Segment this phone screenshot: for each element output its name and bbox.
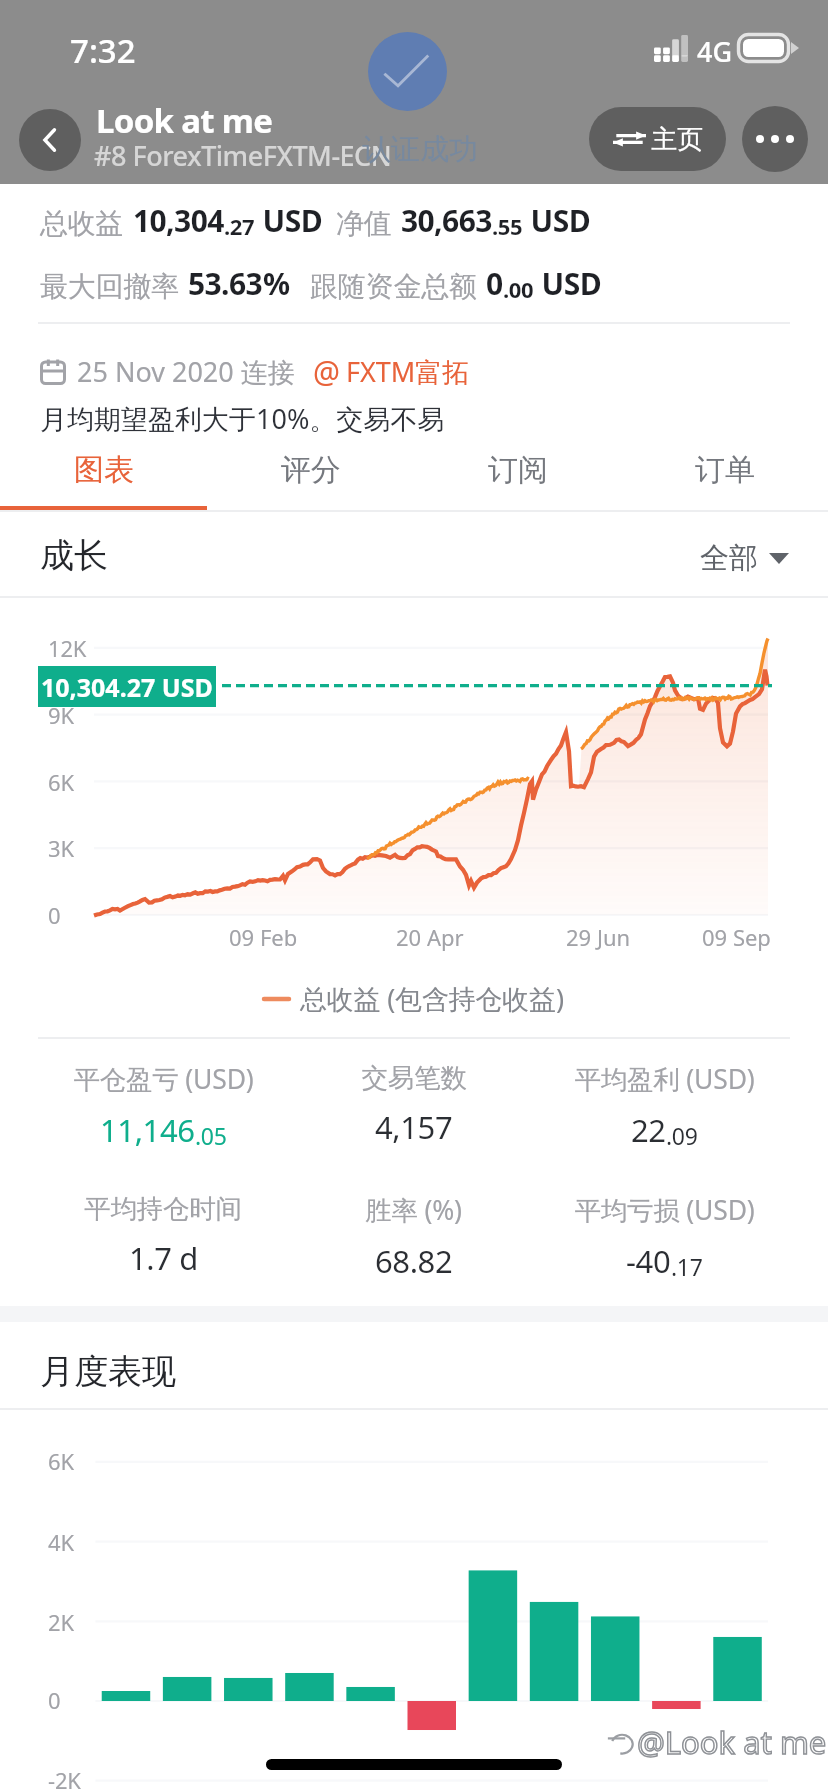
staticText: .00 xyxy=(503,274,534,304)
staticText: 平均持仓时间 xyxy=(84,1192,242,1225)
staticText: 主页 xyxy=(651,123,703,156)
staticText: 平均亏损 (USD) xyxy=(574,1192,755,1228)
staticText: 11,146 xyxy=(100,1109,195,1151)
staticText: #8 ForexTimeFXTM-ECN xyxy=(94,137,392,174)
button[interactable]: 主页 xyxy=(589,107,726,171)
staticText: 10,304.27 USD xyxy=(41,670,213,704)
staticText: 0 xyxy=(48,900,61,930)
staticText: -2K xyxy=(48,1765,81,1792)
staticText: 图表 xyxy=(74,451,134,489)
staticText: -40 xyxy=(626,1240,671,1282)
staticText: 20 Apr xyxy=(396,922,464,952)
staticText: 30,663 xyxy=(401,200,492,241)
staticText: 4K xyxy=(48,1527,74,1557)
staticText: 成长 xyxy=(40,534,108,577)
staticText: 交易笔数 xyxy=(361,1061,467,1094)
staticText: .17 xyxy=(671,1251,703,1282)
staticText: 月均期望盈利大于10%。交易不易 xyxy=(40,400,445,437)
staticText: 胜率 (%) xyxy=(365,1192,462,1228)
button[interactable]: 图表 xyxy=(0,446,207,512)
staticText: .05 xyxy=(195,1120,227,1151)
staticText: 月度表现 xyxy=(40,1350,176,1393)
staticText: 跟随资金总额 xyxy=(310,269,477,304)
button[interactable]: 订单 xyxy=(621,446,828,512)
staticText: 净值 xyxy=(336,206,392,241)
staticText: 订单 xyxy=(695,451,755,489)
staticText: FXTM富拓 xyxy=(346,353,470,390)
staticText: Look at me xyxy=(96,98,273,143)
staticText: 29 Jun xyxy=(566,922,631,952)
staticText: .09 xyxy=(666,1120,698,1151)
staticText: 9K xyxy=(48,700,74,730)
staticText: 评分 xyxy=(281,451,341,489)
button[interactable]: 全部 xyxy=(700,540,789,577)
staticText: @Look at me xyxy=(637,1721,827,1763)
staticText: 25 Nov 2020 连接 xyxy=(77,353,295,390)
button[interactable]: Back xyxy=(19,109,81,171)
staticText: 22 xyxy=(631,1109,666,1151)
staticText: 1.7 d xyxy=(129,1237,198,1279)
staticText: USD xyxy=(255,200,323,241)
staticText: .27 xyxy=(224,211,255,241)
staticText: USD xyxy=(523,200,591,241)
staticText: 0 xyxy=(48,1685,61,1715)
staticText: 09 Sep xyxy=(702,922,771,952)
staticText: 总收益 (包含持仓收益) xyxy=(300,980,564,1017)
staticText: 2K xyxy=(48,1607,74,1637)
staticText: 09 Feb xyxy=(229,922,298,952)
button[interactable]: 评分 xyxy=(207,446,414,512)
staticText: 4G xyxy=(697,33,733,70)
staticText: 68.82 xyxy=(375,1240,453,1282)
staticText: 6K xyxy=(48,1446,74,1476)
staticText: 订阅 xyxy=(488,451,548,489)
button[interactable]: @ xyxy=(313,351,470,392)
staticText: 平均盈利 (USD) xyxy=(574,1061,755,1097)
staticText: 总收益 xyxy=(40,206,124,241)
staticText: 认证成功 xyxy=(362,131,478,168)
staticText: 0 xyxy=(486,263,503,304)
staticText: 12K xyxy=(48,633,87,663)
staticText: 53.63 xyxy=(188,263,263,304)
staticText: 3K xyxy=(48,833,74,863)
staticText: 最大回撤率 xyxy=(40,269,179,304)
staticText: 全部 xyxy=(700,540,758,577)
staticText: 平仓盈亏 (USD) xyxy=(73,1061,254,1097)
staticText: 6K xyxy=(48,767,74,797)
staticText: 7:32 xyxy=(70,28,136,73)
staticText: 4,157 xyxy=(375,1106,453,1148)
staticText: % xyxy=(263,263,290,304)
staticText: .55 xyxy=(492,211,523,241)
button[interactable]: More options xyxy=(742,106,808,172)
staticText: 10,304 xyxy=(133,200,224,241)
button[interactable]: 订阅 xyxy=(414,446,621,512)
staticText: @ xyxy=(313,351,340,392)
staticText: USD xyxy=(534,263,602,304)
